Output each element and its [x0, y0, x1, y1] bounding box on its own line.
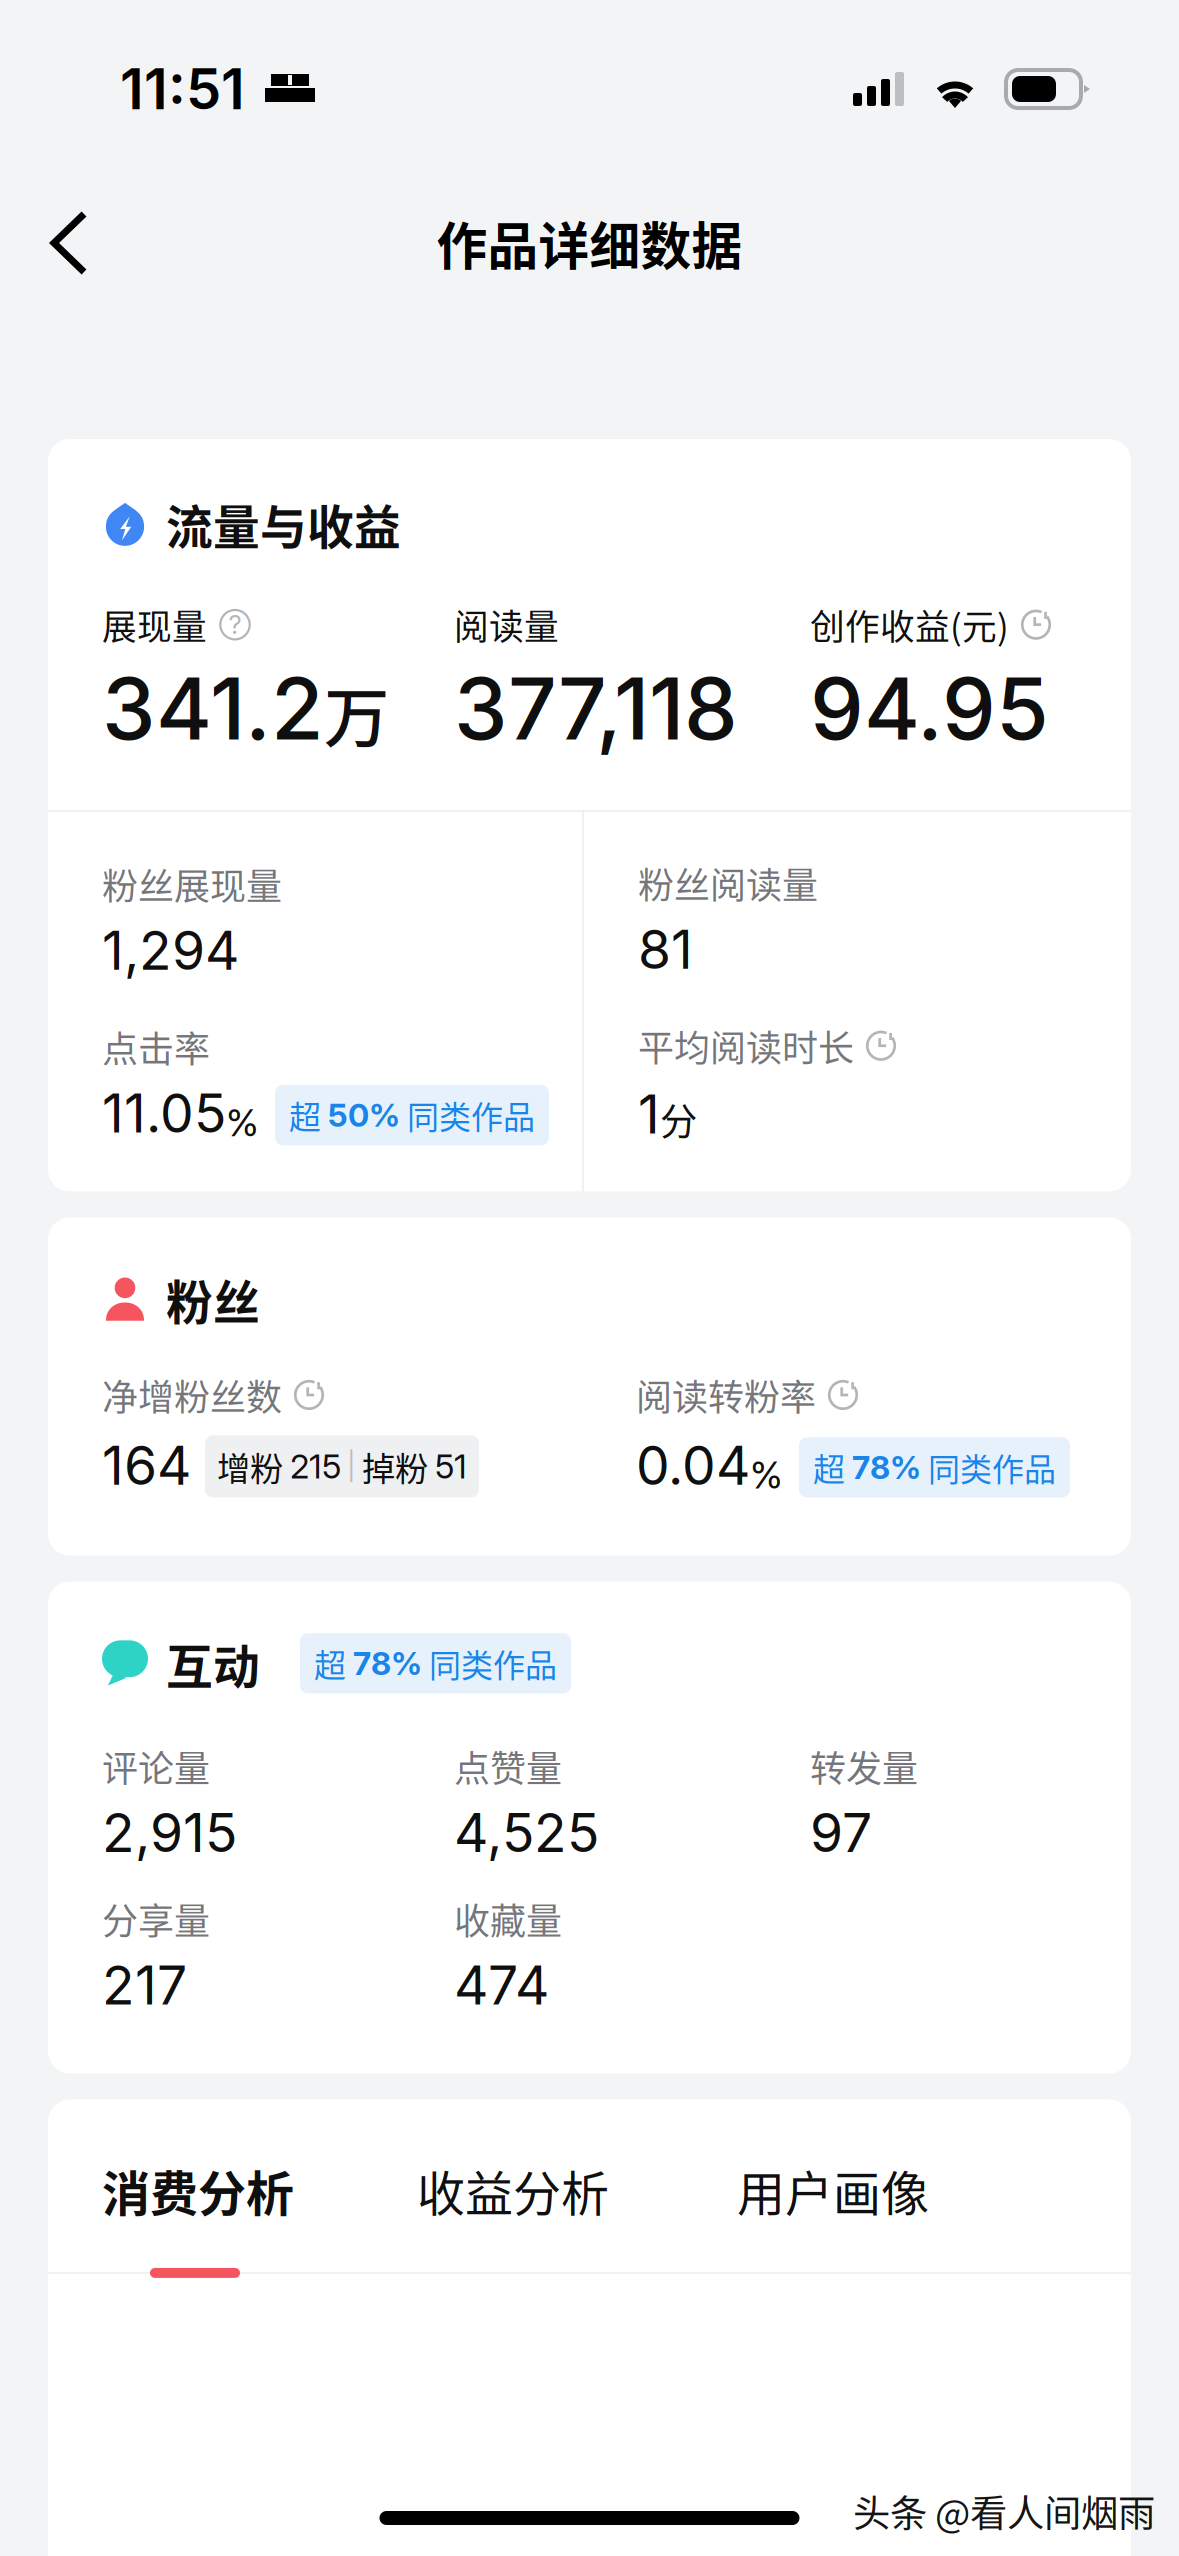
staticText: 点击率	[102, 1021, 210, 1073]
staticText: 2,915	[102, 1800, 237, 1865]
staticText: 同类作品	[407, 1092, 535, 1138]
staticText: 分享量	[102, 1893, 210, 1945]
staticText: 评论量	[102, 1740, 210, 1792]
staticText: 78%	[852, 1448, 921, 1487]
staticText: 用户画像	[737, 2155, 929, 2225]
staticText: 81	[638, 917, 693, 982]
staticText: 97	[810, 1800, 872, 1865]
staticText: 掉粉	[362, 1442, 428, 1491]
staticText: 50%	[328, 1096, 400, 1134]
staticText: 粉丝展现量	[102, 858, 282, 910]
staticText: 互动	[166, 1630, 260, 1697]
staticText: 分	[660, 1092, 697, 1146]
staticText: 超	[813, 1444, 845, 1490]
staticText: 0.04	[636, 1433, 750, 1497]
staticText: 消费分析	[102, 2155, 294, 2225]
staticText: 作品详细数据	[436, 206, 742, 280]
staticText: 净增粉丝数	[102, 1369, 282, 1421]
staticText: 增粉	[217, 1442, 283, 1491]
staticText: 215	[290, 1446, 341, 1487]
staticText: ?	[228, 609, 241, 640]
staticText: |	[347, 1450, 356, 1483]
staticText: 474	[454, 1953, 549, 2017]
staticText: 377,118	[454, 657, 738, 760]
staticText: 点赞量	[454, 1740, 562, 1792]
staticText: 11.05	[102, 1081, 226, 1145]
staticText: 阅读转粉率	[636, 1369, 816, 1421]
staticText: 粉丝阅读量	[638, 857, 818, 909]
button[interactable]: Back	[0, 188, 118, 298]
staticText: %	[750, 1452, 783, 1498]
staticText: 4,525	[454, 1800, 599, 1865]
staticText: 同类作品	[429, 1640, 557, 1686]
staticText: 超	[289, 1092, 321, 1138]
button[interactable]: 用户画像	[737, 2155, 1037, 2225]
staticText: 341.2	[102, 657, 324, 760]
staticText: 11:51	[120, 55, 245, 123]
staticText: 收藏量	[454, 1893, 562, 1945]
staticText: 78%	[353, 1644, 422, 1683]
staticText: 展现量	[102, 600, 207, 650]
staticText: %	[226, 1100, 259, 1145]
staticText: 转发量	[810, 1740, 918, 1792]
button[interactable]: 消费分析	[102, 2155, 417, 2225]
staticText: 217	[102, 1953, 187, 2017]
staticText: 创作收益(元)	[810, 600, 1009, 650]
staticText: 平均阅读时长	[638, 1020, 854, 1072]
staticText: 1,294	[102, 918, 239, 983]
staticText: 164	[102, 1433, 191, 1497]
button[interactable]: 收益分析	[417, 2155, 737, 2225]
staticText: 94.95	[810, 657, 1049, 760]
staticText: 收益分析	[417, 2155, 609, 2225]
staticText: 超	[314, 1640, 346, 1686]
staticText: 流量与收益	[166, 490, 401, 558]
staticText: 51	[435, 1446, 467, 1487]
staticText: 头条 @看人间烟雨	[853, 2484, 1155, 2538]
staticText: 万	[324, 665, 389, 760]
staticText: 1	[638, 1082, 660, 1146]
staticText: 粉丝	[166, 1265, 260, 1333]
staticText: 阅读量	[454, 600, 559, 650]
staticText: 同类作品	[928, 1444, 1056, 1490]
